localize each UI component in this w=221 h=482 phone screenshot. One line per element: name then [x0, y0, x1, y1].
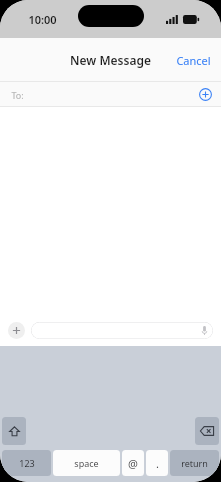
button[interactable]: Cancel — [166, 47, 221, 74]
staticText: space — [74, 457, 99, 469]
staticText: . — [156, 456, 159, 471]
staticText: New Message — [70, 52, 151, 68]
other: Dictate — [202, 326, 207, 335]
button[interactable]: @ — [122, 450, 144, 476]
button[interactable]: 123 — [2, 450, 51, 476]
button[interactable]: Dictate — [31, 322, 213, 339]
button[interactable]: Backspace — [195, 417, 219, 445]
staticText: 10:00 — [28, 12, 57, 27]
button[interactable]: . — [146, 450, 168, 476]
button[interactable]: space — [53, 450, 120, 476]
staticText: @ — [128, 456, 138, 471]
button[interactable]: Add attachment — [8, 322, 25, 339]
button[interactable]: Shift — [2, 417, 26, 445]
button[interactable]: To: — [0, 82, 221, 107]
staticText: return — [181, 457, 208, 469]
button[interactable]: Add contact — [199, 88, 212, 101]
staticText: Cancel — [176, 53, 211, 68]
button[interactable]: return — [170, 450, 219, 476]
staticText: To: — [11, 89, 24, 101]
staticText: 123 — [19, 457, 35, 469]
